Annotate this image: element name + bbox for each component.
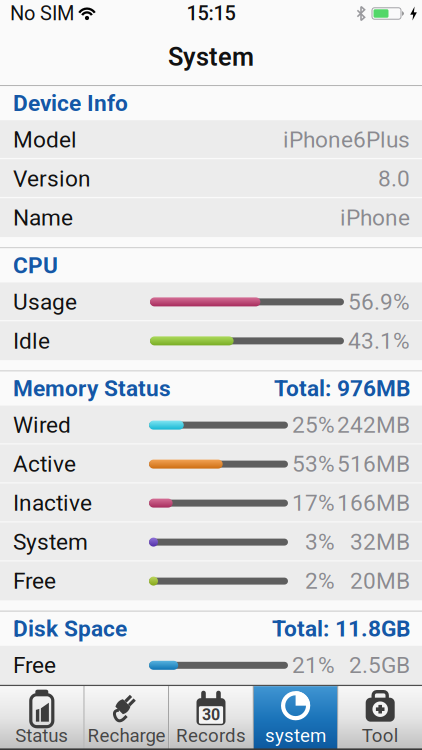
staticText: System [13, 529, 88, 555]
button[interactable]: system [254, 686, 337, 750]
staticText: Tool [362, 725, 399, 746]
staticText: iPhone6Plus [283, 127, 410, 153]
staticText: 166MB [337, 490, 410, 516]
staticText: 30 [202, 706, 220, 724]
button[interactable]: Recharge [85, 686, 168, 750]
staticText: 15:15 [186, 2, 235, 25]
staticText: 20MB [350, 568, 410, 594]
staticText: 17% [292, 490, 335, 516]
staticText: Version [13, 166, 91, 192]
staticText: Disk Space [13, 616, 127, 642]
staticText: Inactive [13, 490, 92, 516]
staticText: Status [15, 725, 68, 746]
staticText: 32MB [350, 529, 410, 555]
staticText: Device Info [13, 90, 128, 116]
staticText: Recharge [87, 725, 165, 746]
staticText: No SIM [10, 2, 74, 25]
staticText: 2% [305, 568, 335, 594]
staticText: Records [176, 725, 246, 746]
staticText: Total: 11.8GB [272, 616, 410, 642]
staticText: Wired [13, 412, 71, 438]
staticText: CPU [13, 252, 58, 278]
staticText: 3% [305, 529, 335, 555]
staticText: 242MB [337, 412, 410, 438]
staticText: Name [13, 205, 73, 231]
button[interactable]: 30 [169, 686, 253, 750]
staticText: Memory Status [13, 376, 171, 402]
staticText: Model [13, 127, 77, 153]
staticText: 56.9% [348, 289, 410, 315]
staticText: Free [13, 568, 56, 594]
staticText: 53% [292, 451, 335, 477]
staticText: Total: 976MB [274, 376, 410, 402]
staticText: Active [13, 451, 76, 477]
staticText: Free [13, 652, 56, 678]
staticText: 21% [292, 652, 335, 678]
staticText: 516MB [337, 451, 410, 477]
staticText: system [265, 725, 326, 746]
staticText: 8.0 [378, 166, 410, 192]
button[interactable]: Status [0, 686, 84, 750]
staticText: iPhone [340, 205, 410, 231]
staticText: Idle [13, 328, 50, 354]
staticText: Usage [13, 289, 77, 315]
staticText: 43.1% [348, 328, 410, 354]
staticText: 25% [292, 412, 335, 438]
staticText: System [168, 42, 254, 71]
staticText: 2.5GB [349, 652, 410, 678]
button[interactable]: Tool [338, 686, 422, 750]
